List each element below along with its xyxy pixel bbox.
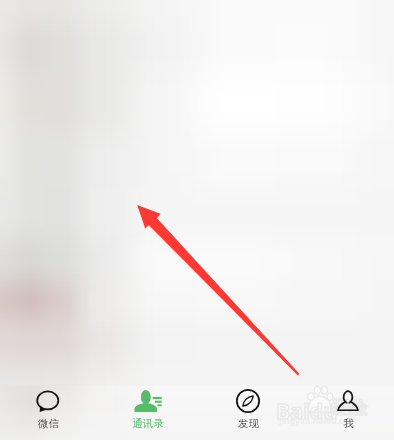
button[interactable]: WeChat xyxy=(0,385,98,440)
button[interactable]: Contacts xyxy=(98,385,198,440)
staticText: 发现 xyxy=(238,417,259,430)
staticText: 微信 xyxy=(38,417,59,430)
staticText: 经验 xyxy=(331,397,367,420)
staticText: jingyan.baidu.com xyxy=(279,415,358,427)
button[interactable]: Discover xyxy=(198,385,298,440)
staticText: Baidu xyxy=(276,396,338,425)
staticText: 我 xyxy=(343,417,354,430)
staticText: 通讯录 xyxy=(132,417,164,430)
button[interactable]: Me xyxy=(298,385,394,440)
